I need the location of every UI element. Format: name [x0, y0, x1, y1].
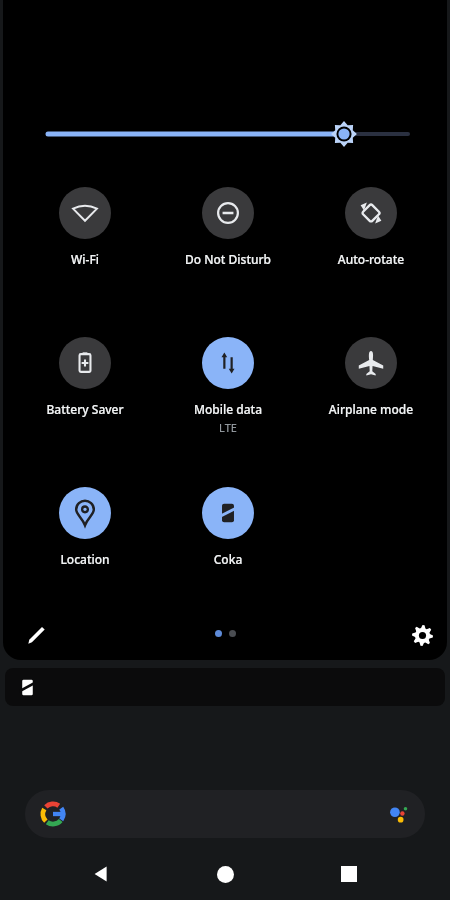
button[interactable]: Coka	[176, 481, 280, 567]
button[interactable]: Auto-rotate	[319, 181, 423, 267]
button[interactable]: Wi-Fi	[33, 181, 137, 267]
button[interactable]: Home	[197, 848, 253, 900]
staticText: Coka	[176, 551, 280, 567]
button[interactable]: Location	[33, 481, 137, 567]
staticText: Do Not Disturb	[176, 251, 280, 267]
staticText: Battery Saver	[33, 401, 137, 417]
button[interactable]: Search	[25, 790, 425, 838]
staticText: Auto-rotate	[319, 251, 423, 267]
staticText: Mobile data	[176, 401, 280, 417]
button[interactable]: Edit tiles	[19, 618, 53, 652]
button[interactable]: Brightness	[328, 118, 360, 150]
staticText: Wi-Fi	[33, 251, 137, 267]
button[interactable]: Settings	[405, 618, 439, 652]
button[interactable]: Airplane mode	[319, 331, 423, 417]
button[interactable]: Back	[73, 848, 129, 900]
button[interactable]: Recent apps	[321, 848, 377, 900]
button[interactable]: Mobile data	[176, 331, 280, 435]
button[interactable]: Do Not Disturb	[176, 181, 280, 267]
staticText: Location	[33, 551, 137, 567]
staticText: LTE	[176, 420, 280, 435]
button[interactable]: Battery Saver	[33, 331, 137, 417]
staticText: Airplane mode	[319, 401, 423, 417]
button[interactable]	[5, 668, 445, 706]
